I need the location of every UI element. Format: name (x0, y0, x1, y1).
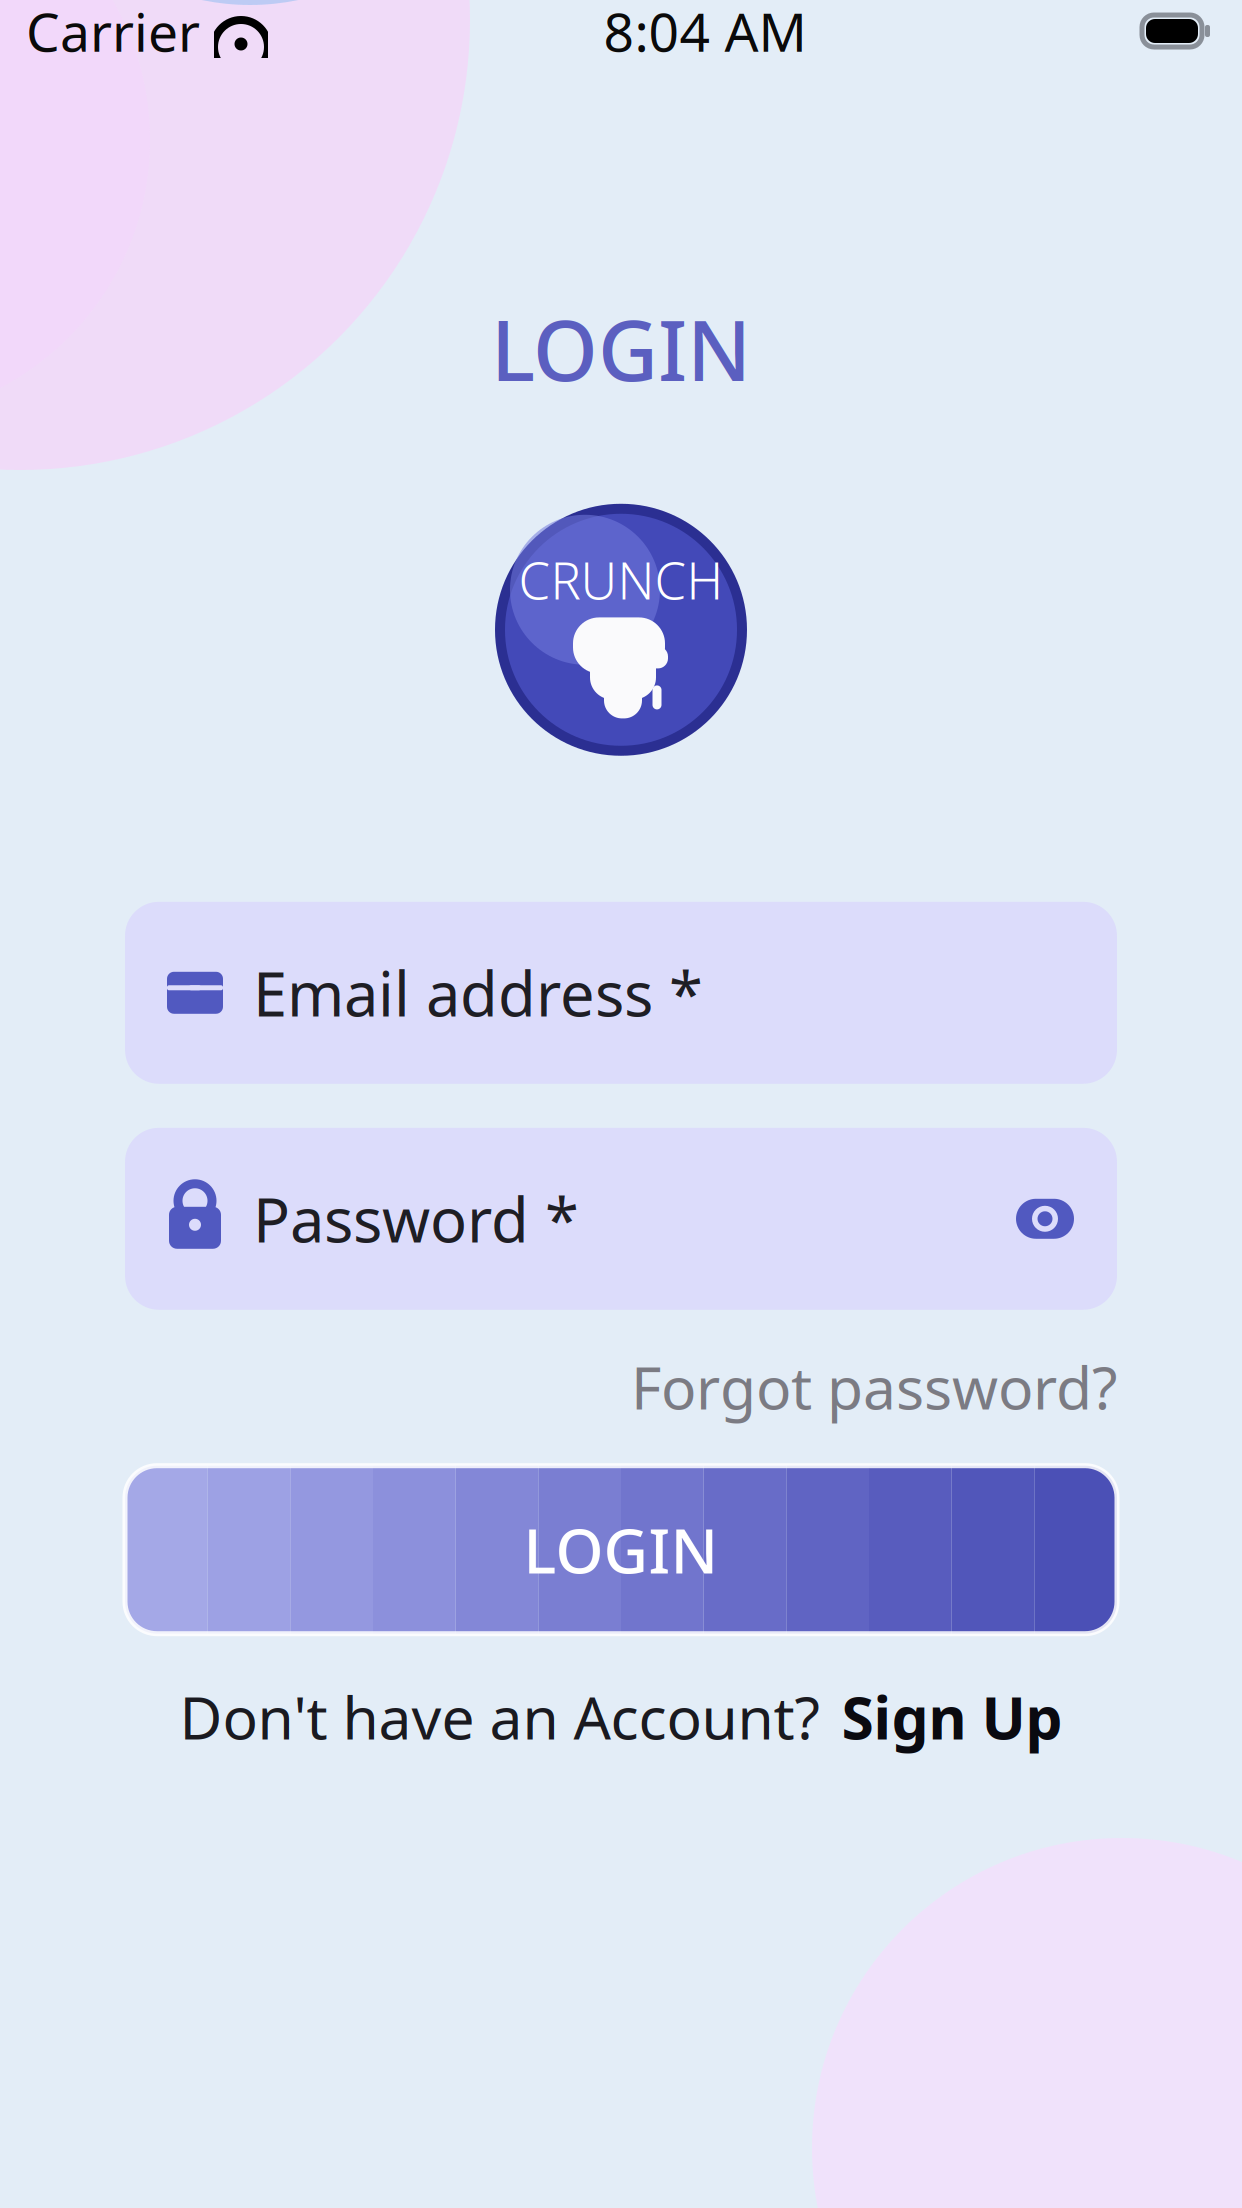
button[interactable]: Email address * (125, 902, 1117, 1084)
button[interactable]: LOGIN (125, 1466, 1117, 1634)
staticText: LOGIN (523, 1509, 718, 1590)
staticText: LOGIN (491, 294, 751, 404)
staticText: CRUNCH (518, 546, 723, 613)
button[interactable]: Forgot password? (631, 1340, 1117, 1434)
staticText: 8:04 AM (603, 0, 806, 66)
staticText: Don't have an Account? (179, 1678, 819, 1756)
staticText: Email address * (253, 952, 703, 1033)
staticText: Carrier (26, 0, 200, 66)
staticText: Password * (253, 1178, 579, 1259)
button[interactable]: Password * (125, 1128, 1117, 1310)
button[interactable]: Sign Up (841, 1678, 1062, 1756)
staticText: Forgot password? (631, 1348, 1117, 1426)
staticText: Sign Up (841, 1678, 1062, 1756)
